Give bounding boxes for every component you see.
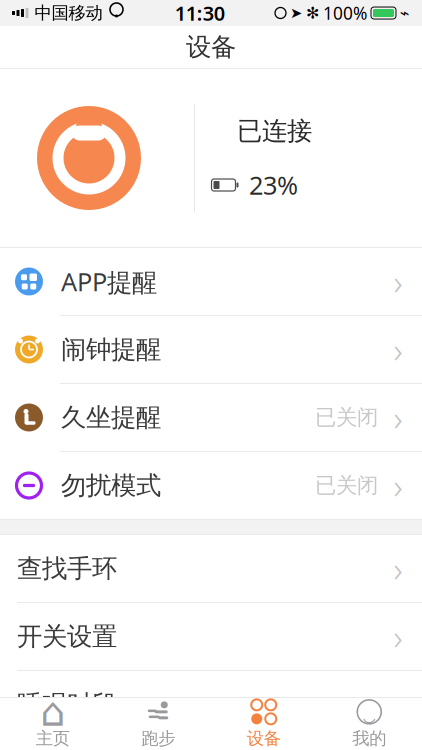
staticText: ⌂	[40, 689, 65, 735]
staticText: ✻	[306, 4, 319, 22]
staticText: APP提醒	[61, 265, 157, 298]
staticText: 主页	[36, 728, 70, 749]
button[interactable]: ‿	[316, 698, 422, 750]
button[interactable]: 开关设置	[0, 603, 422, 670]
button[interactable]: 勿扰模式	[0, 452, 422, 519]
button[interactable]: 睡眠时段	[0, 671, 422, 738]
staticText: 闹钟提醒	[61, 334, 161, 365]
staticText: ›	[393, 462, 402, 508]
staticText: ›	[393, 394, 402, 440]
button[interactable]: ⌂	[0, 698, 105, 750]
staticText: ›	[393, 681, 402, 727]
button[interactable]: 查找手环	[0, 535, 422, 602]
staticText: ‿	[363, 696, 376, 724]
staticText: 设备	[247, 728, 281, 749]
staticText: 睡眠时段	[17, 689, 117, 720]
staticText: 中国移动	[34, 2, 102, 24]
staticText: ›	[393, 326, 402, 372]
button[interactable]: 设备	[211, 698, 316, 750]
staticText: ⌁	[400, 4, 410, 22]
staticText: 勿扰模式	[61, 470, 161, 501]
staticText: 23%	[249, 168, 298, 202]
staticText: 已连接	[237, 115, 312, 146]
button[interactable]: APP提醒	[0, 248, 422, 315]
staticText: 我的	[352, 728, 386, 749]
staticText: 设备	[186, 31, 236, 62]
staticText: 查找手环	[17, 553, 117, 584]
staticText: ›	[393, 613, 402, 659]
button[interactable]: �require	[15, 83, 407, 233]
staticText: 100%	[323, 1, 367, 24]
button[interactable]: 久坐提醒	[0, 384, 422, 451]
staticText: 01:00 - 09:00	[251, 690, 378, 719]
staticText: ›	[393, 258, 402, 304]
staticText: 已关闭	[315, 472, 378, 499]
staticText: 跑步	[141, 728, 175, 749]
staticText: 开关设置	[17, 621, 117, 652]
staticText: 久坐提醒	[61, 402, 161, 433]
staticText: ➤	[290, 5, 302, 21]
staticText: ›	[393, 545, 402, 591]
button[interactable]: 跑步	[105, 698, 211, 750]
staticText: 已关闭	[315, 404, 378, 431]
staticText: 11:30	[175, 0, 225, 26]
button[interactable]: 闹钟提醒	[0, 316, 422, 383]
